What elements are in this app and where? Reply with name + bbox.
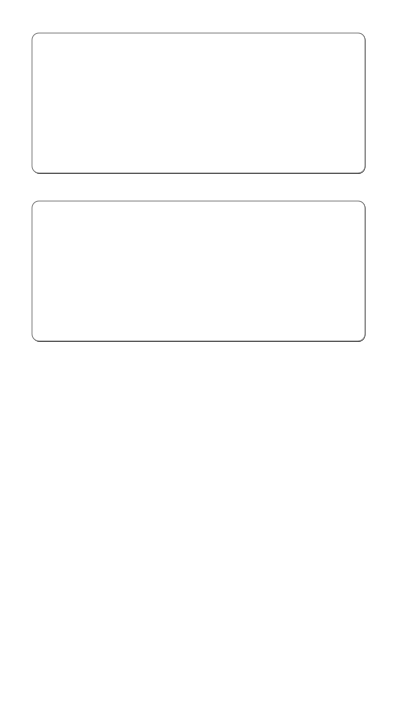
button[interactable]	[32, 201, 365, 341]
button[interactable]	[32, 33, 365, 173]
